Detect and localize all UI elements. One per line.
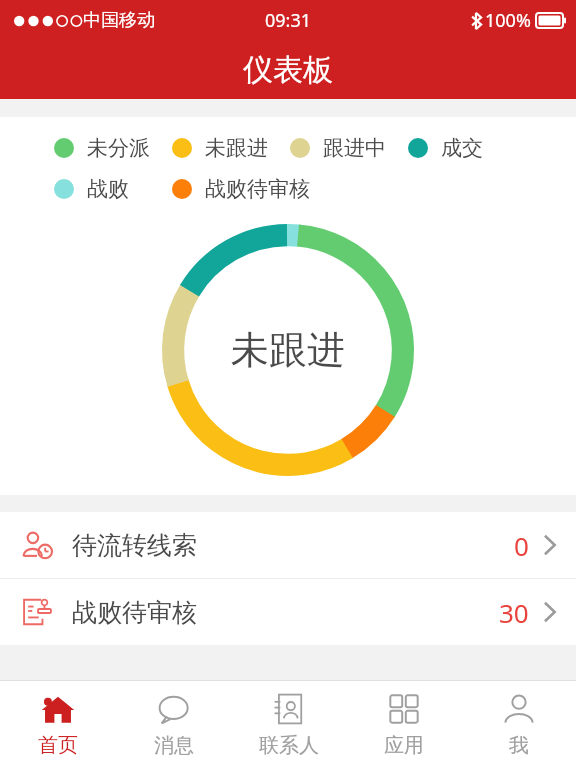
button[interactable]: 消息 — [116, 681, 231, 768]
button[interactable]: 未分派 — [54, 135, 172, 161]
staticText: 成交 — [441, 135, 483, 161]
button[interactable]: 首页 — [0, 681, 116, 768]
button[interactable]: 待流转线索 — [0, 512, 576, 578]
staticText: 战败 — [87, 176, 129, 202]
button[interactable]: 跟进中 — [290, 135, 408, 161]
staticText: 100% — [485, 8, 531, 33]
staticText: 战败待审核 — [205, 176, 310, 202]
staticText: 未跟进 — [205, 135, 268, 161]
staticText: 联系人 — [259, 733, 319, 758]
staticText: 首页 — [38, 733, 78, 758]
staticText: 应用 — [384, 733, 424, 758]
staticText: 仪表板 — [243, 51, 333, 89]
staticText: 待流转线索 — [72, 530, 197, 561]
staticText: 跟进中 — [323, 135, 386, 161]
staticText: 未跟进 — [231, 326, 345, 374]
staticText: 09:31 — [265, 8, 312, 33]
staticText: 中国移动 — [83, 9, 155, 32]
staticText: 战败待审核 — [72, 597, 197, 628]
staticText: 消息 — [154, 733, 194, 758]
button[interactable]: 未跟进 — [172, 135, 290, 161]
button[interactable]: 战败待审核 — [172, 176, 332, 202]
button[interactable]: 我 — [461, 681, 576, 768]
staticText: 0 — [514, 528, 529, 563]
staticText: 未分派 — [87, 135, 150, 161]
button[interactable]: 战败待审核 — [0, 579, 576, 645]
button[interactable]: 战败 — [54, 176, 172, 202]
button[interactable]: 联系人 — [231, 681, 346, 768]
staticText: 30 — [499, 595, 529, 630]
staticText: 我 — [509, 733, 529, 758]
button[interactable]: 应用 — [346, 681, 461, 768]
button[interactable]: 成交 — [408, 135, 508, 161]
